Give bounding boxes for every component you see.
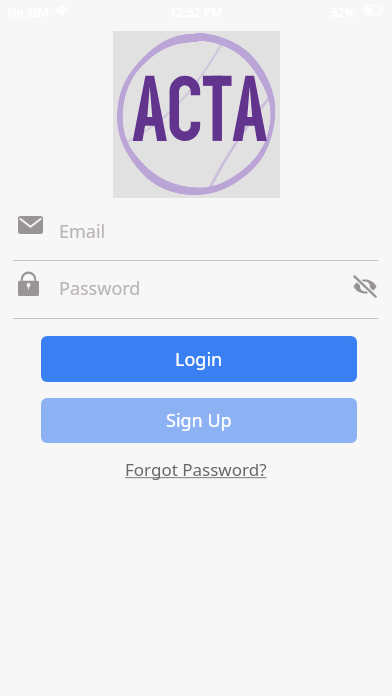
staticText: No SIM — [7, 4, 49, 20]
button[interactable]: Password — [0, 260, 392, 318]
button[interactable]: Show password — [347, 268, 383, 304]
button[interactable]: Forgot Password? — [117, 455, 275, 484]
staticText: 52% — [331, 4, 355, 20]
staticText: Email — [59, 219, 106, 244]
button[interactable]: Login — [41, 336, 357, 382]
staticText: Sign Up — [166, 408, 232, 433]
staticText: Login — [175, 347, 223, 372]
staticText: Password — [59, 276, 141, 301]
staticText: Forgot Password? — [125, 458, 267, 481]
button[interactable]: Sign Up — [41, 398, 357, 443]
button[interactable]: Email — [0, 202, 392, 260]
